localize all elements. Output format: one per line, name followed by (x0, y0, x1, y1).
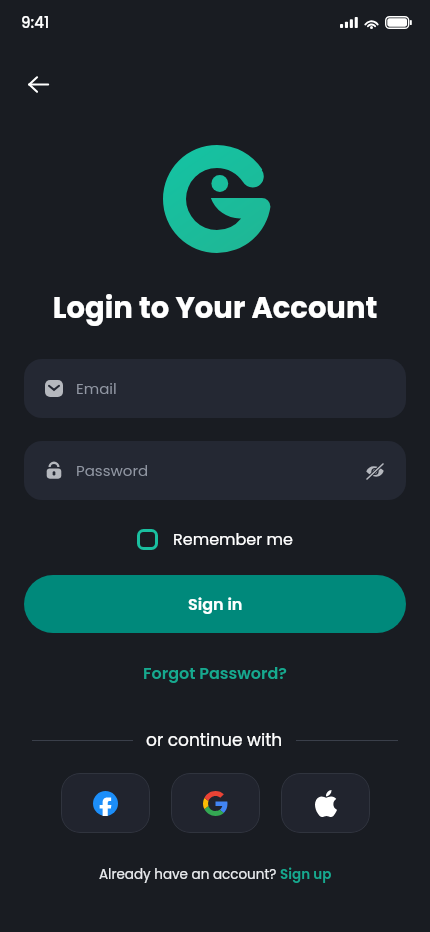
staticText: Password (76, 460, 359, 481)
staticText: Email (76, 378, 391, 399)
staticText: Already have an account? (99, 865, 280, 884)
button[interactable]: Sign in with Google (171, 773, 260, 833)
button[interactable]: Email (24, 359, 406, 418)
button[interactable]: Sign in (24, 575, 406, 633)
button[interactable]: Sign in with Facebook (61, 773, 150, 833)
button[interactable]: Password (24, 441, 406, 500)
staticText: Login to Your Account (0, 288, 430, 329)
staticText: or continue with (146, 728, 283, 752)
button[interactable]: Sign in with Apple (281, 773, 370, 833)
button[interactable]: Forgot Password? (135, 658, 295, 688)
button[interactable]: Remember me (135, 522, 295, 556)
button[interactable]: Sign up (280, 865, 332, 884)
staticText: Sign in (188, 593, 243, 615)
staticText: 9:41 (21, 12, 50, 33)
staticText: Remember me (173, 528, 293, 550)
button[interactable]: Show password (359, 455, 391, 487)
button[interactable]: Back (14, 60, 62, 108)
